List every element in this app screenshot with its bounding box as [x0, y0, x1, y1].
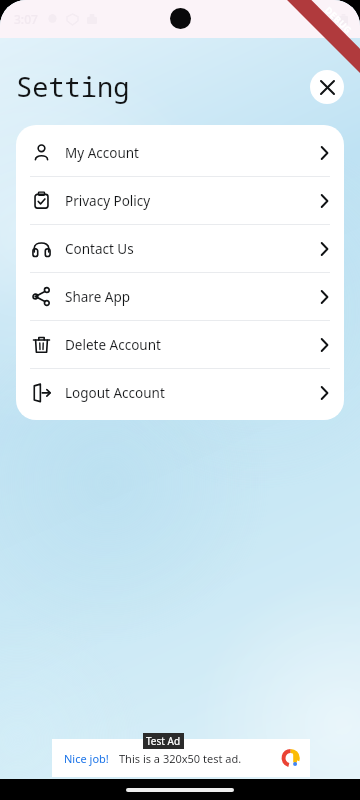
staticText: DEBUG: [323, 4, 355, 36]
staticText: Logout Account: [65, 384, 165, 402]
staticText: 3:07: [14, 11, 38, 27]
staticText: Setting: [16, 68, 130, 105]
staticText: Delete Account: [65, 336, 161, 354]
button[interactable]: Contact Us: [16, 225, 344, 272]
staticText: This is a 320x50 test ad.: [119, 751, 242, 766]
staticText: Share App: [65, 288, 130, 306]
button[interactable]: My Account: [16, 129, 344, 176]
staticText: Contact Us: [65, 240, 134, 258]
button[interactable]: Close: [310, 70, 344, 104]
button[interactable]: Logout Account: [16, 369, 344, 416]
button[interactable]: Nice job!: [52, 739, 310, 777]
staticText: My Account: [65, 144, 139, 162]
button[interactable]: Share App: [16, 273, 344, 320]
button[interactable]: Delete Account: [16, 321, 344, 368]
staticText: Privacy Policy: [65, 192, 151, 210]
button[interactable]: Privacy Policy: [16, 177, 344, 224]
staticText: Nice job!: [64, 751, 109, 766]
staticText: Test Ad: [146, 734, 181, 748]
